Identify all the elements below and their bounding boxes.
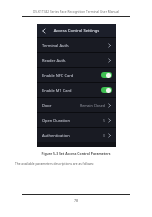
button[interactable]: Back <box>37 24 50 37</box>
staticText: 0 <box>102 133 105 138</box>
staticText: Enable NFC Card <box>42 73 74 78</box>
staticText: 5 <box>102 118 105 123</box>
staticText: Open Duration (s) <box>42 118 72 123</box>
button[interactable]: Reader Auth. Mode <box>37 53 116 67</box>
staticText: Door Contact <box>42 103 60 108</box>
button[interactable]: Enable M1 Card <box>37 83 116 97</box>
staticText: Reader Auth. Mode <box>42 58 74 63</box>
button[interactable]: Enable NFC Card toggle, on <box>101 72 112 78</box>
staticText: Enable M1 Card <box>42 88 72 93</box>
button[interactable]: Enable NFC Card <box>37 68 116 82</box>
staticText: Remain Closed <box>79 103 105 108</box>
button[interactable]: Enable M1 Card toggle, on <box>101 87 112 93</box>
button[interactable]: Door Contact <box>37 98 116 112</box>
staticText: 78 <box>0 198 152 203</box>
button[interactable]: Authentication Interval (s) <box>37 128 116 142</box>
button[interactable]: Terminal Auth. Mode <box>37 38 116 52</box>
button[interactable]: Open Duration (s) <box>37 113 116 127</box>
staticText: Terminal Auth. Mode <box>42 43 74 48</box>
staticText: The available parameters descriptions ar… <box>15 162 152 166</box>
staticText: Figure 5-3 Set Access Control Parameters <box>0 151 152 156</box>
staticText: DS-K1T342 Series Face Recognition Termin… <box>0 10 152 14</box>
staticText: Access Control Settings <box>50 28 103 34</box>
staticText: Authentication Interval (s) <box>42 133 72 138</box>
